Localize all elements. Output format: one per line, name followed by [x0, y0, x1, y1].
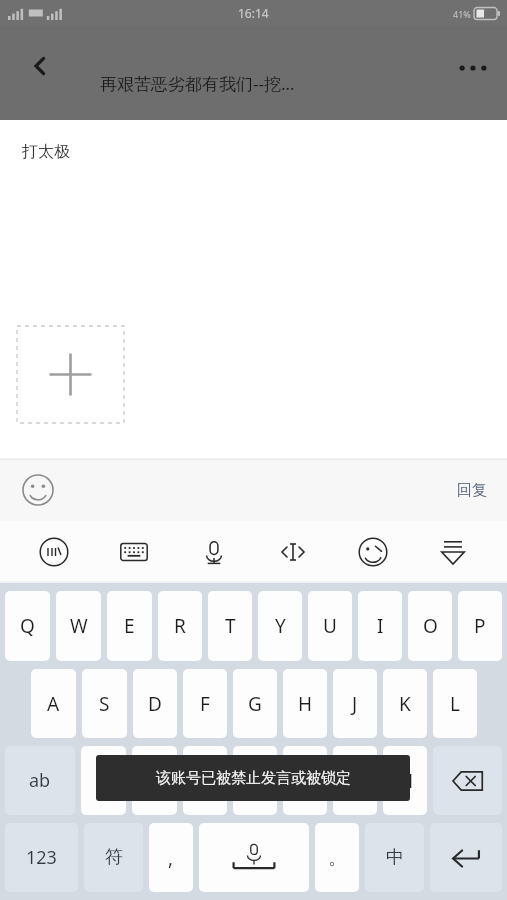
staticText: 该账号已被禁止发言或被锁定 [156, 769, 351, 788]
staticText: X [149, 768, 161, 794]
staticText: C [199, 768, 212, 794]
button[interactable]: X [132, 746, 177, 815]
staticText: 再艰苦恶劣都有我们--挖… [100, 72, 295, 95]
button[interactable]: Q [5, 591, 50, 661]
button[interactable]: Enter [430, 823, 502, 892]
button[interactable]: S [82, 669, 127, 738]
staticText: 。 [328, 846, 347, 870]
button[interactable]: E [107, 591, 152, 661]
button[interactable]: D [133, 669, 177, 738]
button[interactable]: 回复 [449, 475, 495, 506]
button[interactable]: T [208, 591, 252, 661]
button[interactable]: A [31, 669, 76, 738]
button[interactable]: V [233, 746, 277, 815]
staticText: N [348, 768, 363, 794]
staticText: 16:14 [238, 5, 269, 21]
staticText: D [148, 691, 162, 717]
button[interactable]: C [183, 746, 227, 815]
button[interactable]: U [308, 591, 352, 661]
staticText: F [200, 691, 210, 717]
button[interactable]: Back [18, 44, 62, 88]
button[interactable]: Hide keyboard [427, 526, 479, 578]
staticText: R [174, 613, 186, 639]
staticText: , [168, 845, 174, 871]
button[interactable]: Delete [433, 746, 502, 815]
button[interactable]: Emoji [14, 466, 62, 514]
button[interactable]: Emoji [347, 526, 399, 578]
staticText: W [70, 613, 88, 639]
button[interactable]: I [358, 591, 402, 661]
staticText: G [248, 691, 262, 717]
button[interactable]: Keyboard [108, 526, 160, 578]
staticText: M [396, 768, 414, 794]
staticText: B [299, 768, 312, 794]
button[interactable]: Z [81, 746, 126, 815]
button[interactable]: Add image [17, 326, 124, 423]
staticText: U [323, 613, 337, 639]
button[interactable]: J [333, 669, 377, 738]
staticText: A [47, 691, 60, 717]
button[interactable]: ab [5, 746, 75, 815]
staticText: 41% [453, 8, 471, 20]
staticText: Q [20, 613, 35, 639]
button[interactable]: 。 [315, 823, 359, 892]
staticText: Y [275, 613, 286, 639]
button[interactable]: , [149, 823, 193, 892]
staticText: 符 [105, 846, 123, 869]
button[interactable]: F [183, 669, 227, 738]
button[interactable]: 123 [5, 823, 78, 892]
staticText: I [377, 613, 384, 639]
button[interactable]: More options [449, 44, 497, 92]
staticText: 中 [386, 846, 404, 869]
button[interactable]: K [383, 669, 427, 738]
button[interactable]: O [408, 591, 452, 661]
staticText: 123 [26, 845, 57, 870]
button[interactable]: N [333, 746, 377, 815]
staticText: J [352, 691, 358, 717]
staticText: L [450, 691, 460, 717]
button[interactable]: W [56, 591, 101, 661]
button[interactable]: Move cursor [267, 526, 319, 578]
button[interactable]: R [158, 591, 202, 661]
button[interactable]: L [433, 669, 477, 738]
button[interactable]: Voice input [188, 526, 240, 578]
button[interactable]: Y [258, 591, 302, 661]
staticText: P [474, 613, 486, 639]
button[interactable]: 中 [365, 823, 424, 892]
button[interactable]: B [283, 746, 327, 815]
staticText: T [225, 613, 236, 639]
button[interactable]: G [233, 669, 277, 738]
staticText: E [124, 613, 135, 639]
staticText: O [423, 613, 438, 639]
button[interactable]: Space [199, 823, 309, 892]
button[interactable]: 符 [84, 823, 143, 892]
staticText: K [399, 691, 411, 717]
staticText: V [249, 768, 261, 794]
staticText: 回复 [457, 481, 487, 500]
button[interactable]: P [458, 591, 502, 661]
staticText: S [99, 691, 110, 717]
staticText: ab [29, 768, 51, 793]
button[interactable]: M [383, 746, 427, 815]
button[interactable]: Input method [28, 526, 80, 578]
staticText: 打太极 [22, 142, 70, 162]
button[interactable]: H [283, 669, 327, 738]
staticText: H [298, 691, 313, 717]
